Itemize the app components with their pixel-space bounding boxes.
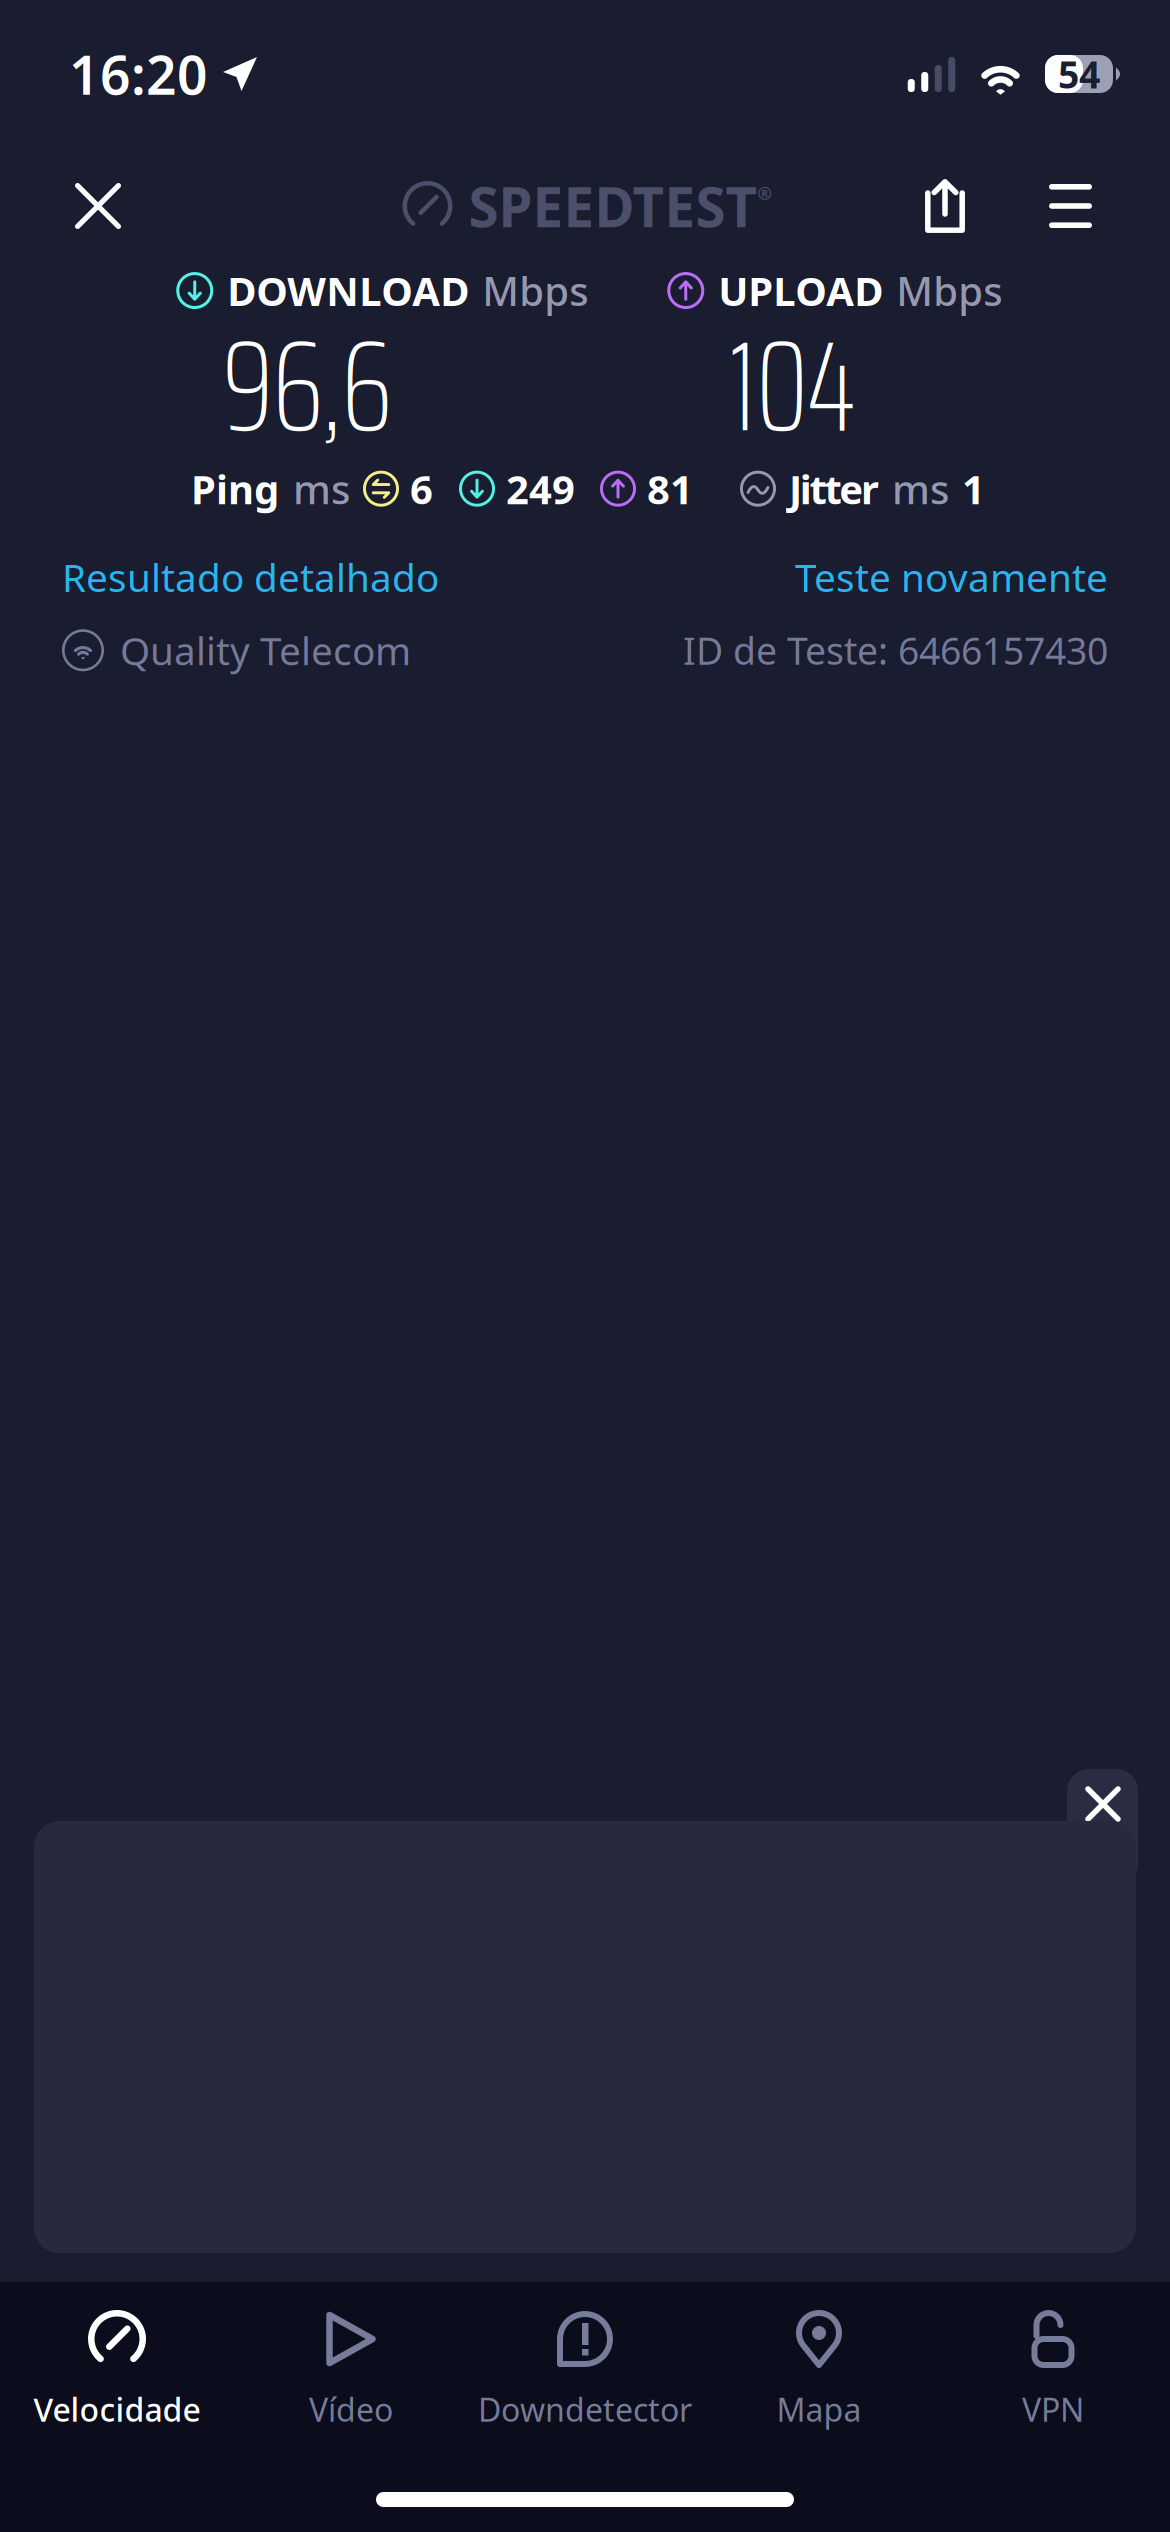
staticText: Downdetector bbox=[478, 2388, 692, 2430]
staticText: Resultado detalhado bbox=[62, 551, 439, 602]
staticText: ms bbox=[293, 462, 350, 515]
staticText: ms bbox=[892, 462, 949, 515]
staticText: ® bbox=[757, 181, 771, 204]
staticText: Ping bbox=[191, 462, 279, 515]
staticText: Teste novamente bbox=[795, 551, 1108, 602]
staticText: Mapa bbox=[776, 2388, 861, 2430]
staticText: Quality Telecom bbox=[120, 625, 411, 676]
button[interactable]: Velocidade bbox=[0, 2310, 234, 2430]
button[interactable]: Mapa bbox=[702, 2310, 936, 2430]
staticText: 96,6 bbox=[222, 285, 392, 486]
staticText: 54 bbox=[1058, 49, 1100, 99]
staticText: 1 bbox=[962, 462, 985, 515]
staticText: ID de Teste: 6466157430 bbox=[683, 625, 1108, 675]
button[interactable]: VPN bbox=[936, 2310, 1170, 2430]
staticText: 104 bbox=[729, 285, 857, 486]
button[interactable]: Teste novamente bbox=[795, 551, 1108, 602]
button[interactable]: Close bbox=[48, 156, 148, 256]
staticText: Mbps bbox=[482, 264, 588, 317]
staticText: 81 bbox=[647, 462, 693, 515]
button[interactable]: Vídeo bbox=[234, 2310, 468, 2430]
staticText: Jitter bbox=[789, 462, 879, 515]
button[interactable]: Resultado detalhado bbox=[62, 551, 439, 602]
staticText: UPLOAD bbox=[718, 264, 883, 317]
button[interactable]: Share bbox=[898, 156, 1024, 256]
staticText: 16:20 bbox=[69, 39, 208, 109]
staticText: Vídeo bbox=[309, 2388, 393, 2430]
staticText: 6 bbox=[410, 462, 433, 515]
staticText: 249 bbox=[506, 462, 575, 515]
staticText: DOWNLOAD bbox=[227, 264, 469, 317]
button[interactable]: Close ad bbox=[1067, 1769, 1138, 1886]
button[interactable]: Downdetector bbox=[468, 2310, 702, 2430]
button[interactable]: Menu bbox=[1024, 156, 1117, 256]
staticText: Velocidade bbox=[33, 2388, 200, 2430]
staticText: SPEEDTEST bbox=[468, 170, 757, 242]
staticText: Mbps bbox=[896, 264, 1002, 317]
staticText: VPN bbox=[1022, 2388, 1084, 2430]
